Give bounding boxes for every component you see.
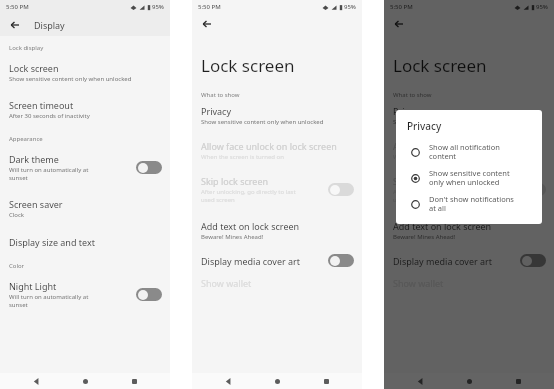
button[interactable]: Privacy [192,105,362,130]
staticText: 5:50 PM [390,3,413,11]
button[interactable]: Toggle [328,254,354,267]
staticText: 95% [152,3,164,11]
staticText: Lock screen [201,54,295,77]
button[interactable]: Back [388,14,410,34]
staticText: Privacy [201,105,232,117]
button[interactable]: Screen timeout [0,90,170,127]
staticText: 95% [536,3,548,11]
staticText: Beware! Mines Ahead! [201,233,264,241]
staticText: What to show [201,91,240,99]
button[interactable]: Night Light [0,273,170,316]
staticText: Show sensitive content only when unlocke… [9,75,132,83]
button[interactable]: Display size and text [0,226,170,254]
staticText: Privacy [393,105,424,117]
staticText: Add text on lock screen [393,220,492,232]
staticText: Privacy [407,119,442,133]
button[interactable]: Show all notification content [407,141,531,163]
staticText: After unlocking, go directly to last use… [393,188,488,204]
staticText: 95% [344,3,356,11]
staticText: Color [9,262,25,270]
staticText: Will turn on automatically at sunset [9,166,89,182]
button[interactable]: Home [264,373,290,389]
staticText: After 30 seconds of inactivity [9,112,90,120]
staticText: Skip lock screen [201,175,269,187]
button[interactable]: Recents [505,373,531,389]
staticText: Show wallet [201,277,252,289]
staticText: Lock screen [393,54,487,77]
staticText: Don't show notifications at all [429,194,514,214]
staticText: Screen saver [9,198,63,210]
button[interactable]: Dark theme [0,146,170,189]
button[interactable]: Add text on lock screen [384,208,554,245]
button[interactable]: Privacy [384,105,554,130]
staticText: Show wallet [393,277,444,289]
staticText: Display media cover art [393,255,493,267]
staticText: Show sensitive content only when unlocke… [393,118,516,126]
staticText: Display media cover art [201,255,301,267]
staticText: Display size and text [9,236,95,248]
staticText: Show sensitive content only when unlocke… [429,168,510,188]
button[interactable]: Add text on lock screen [192,208,362,245]
staticText: Lock screen [9,62,59,74]
staticText: 5:50 PM [6,3,29,11]
button[interactable]: Back [407,373,433,389]
staticText: Will turn on automatically at sunset [9,293,89,309]
staticText: Dark theme [9,153,59,165]
staticText: Lock display [9,44,44,52]
staticText: After unlocking, go directly to last use… [201,188,296,204]
staticText: Night Light [9,280,57,292]
button[interactable]: Display media cover art [192,245,362,273]
button[interactable]: Toggle [136,288,162,301]
button[interactable]: Display media cover art [384,245,554,273]
staticText: When the screen is turned on [393,153,476,161]
button[interactable]: Back [215,373,241,389]
button[interactable]: Toggle [328,183,354,196]
button[interactable]: Show sensitive content only when unlocke… [407,167,531,189]
staticText: 5:50 PM [198,3,221,11]
button[interactable]: Skip lock screen [384,165,554,208]
button[interactable]: Skip lock screen [192,165,362,208]
staticText: Display [34,19,65,31]
staticText: Screen timeout [9,99,74,111]
staticText: What to show [393,91,432,99]
button[interactable]: Back [196,14,218,34]
staticText: Allow face unlock on lock screen [393,140,529,152]
button[interactable]: Home [72,373,98,389]
staticText: Skip lock screen [393,175,461,187]
button[interactable]: Recents [121,373,147,389]
button[interactable]: Toggle [136,161,162,174]
button[interactable]: Don't show notifications at all [407,193,531,215]
button[interactable]: Back [4,14,26,36]
staticText: Show all notification content [429,142,500,162]
button[interactable]: Toggle [520,183,546,196]
staticText: Add text on lock screen [201,220,300,232]
staticText: Allow face unlock on lock screen [201,140,337,152]
staticText: Show sensitive content only when unlocke… [201,118,324,126]
button[interactable]: Screen saver [0,189,170,226]
button[interactable]: Lock screen [0,55,170,90]
staticText: Clock [9,211,25,219]
button[interactable]: Recents [313,373,339,389]
staticText: Appearance [9,135,43,143]
button[interactable]: Allow face unlock on lock screen [384,130,554,165]
button[interactable]: Allow face unlock on lock screen [192,130,362,165]
button[interactable]: Back [23,373,49,389]
staticText: Beware! Mines Ahead! [393,233,456,241]
button[interactable]: Home [456,373,482,389]
button[interactable]: Toggle [520,254,546,267]
staticText: When the screen is turned on [201,153,284,161]
